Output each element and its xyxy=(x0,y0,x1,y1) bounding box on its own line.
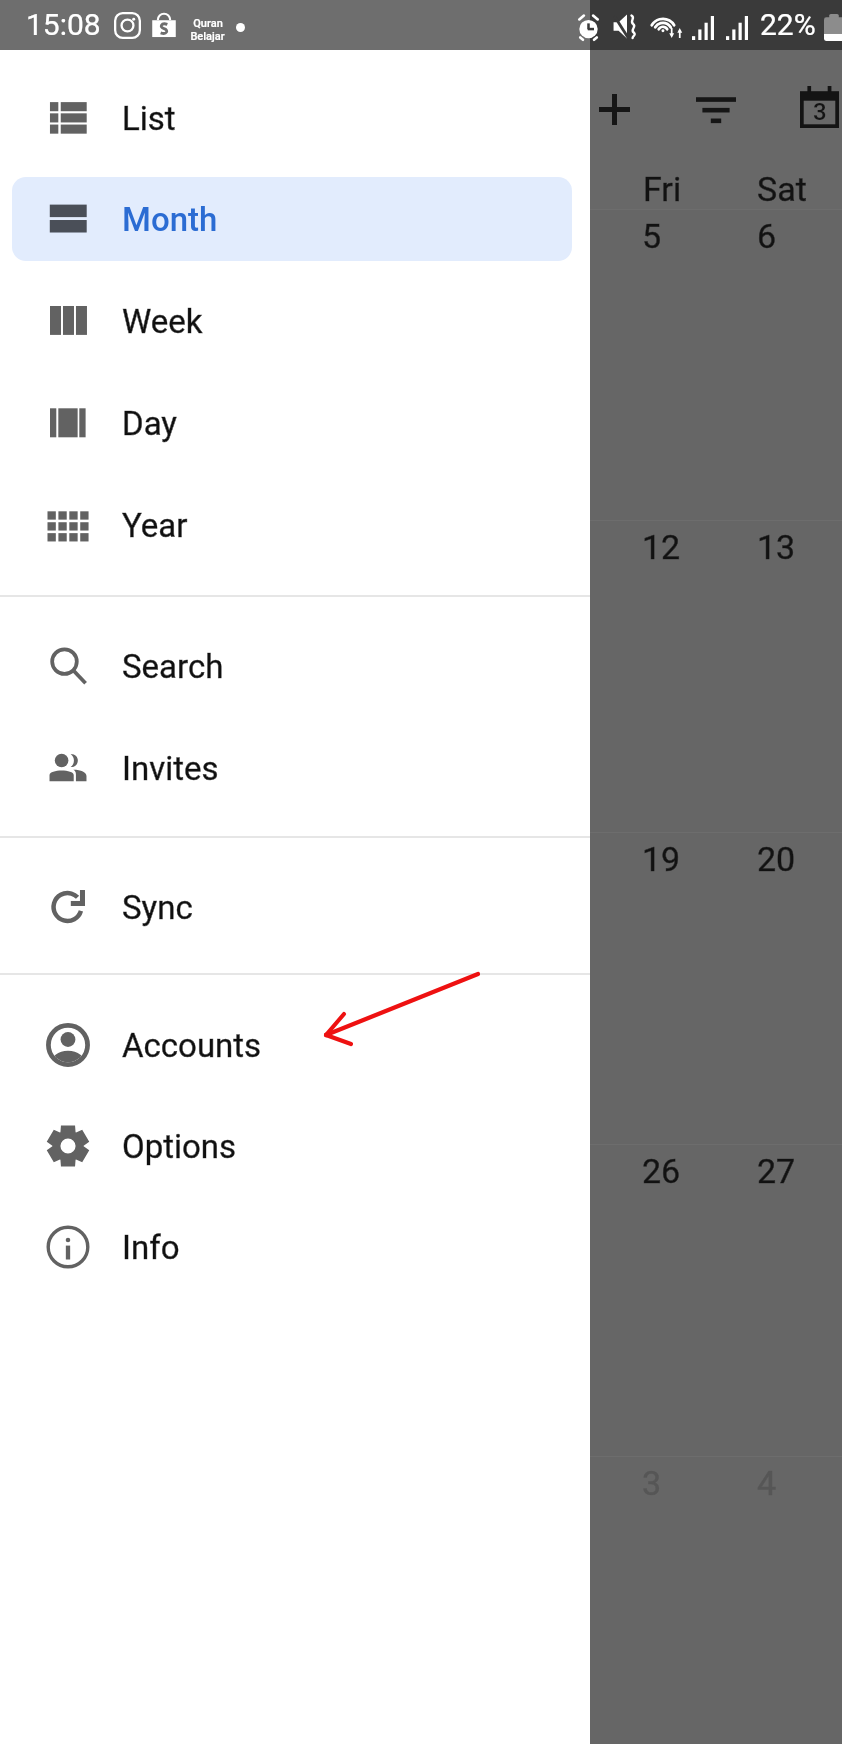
staticText: 19 xyxy=(642,839,681,879)
staticText: 5 xyxy=(642,216,662,256)
staticText: Tue xyxy=(273,169,329,209)
staticText: 26 xyxy=(642,1151,681,1191)
staticText: Week xyxy=(122,302,203,341)
button[interactable]: Sync xyxy=(12,865,572,949)
staticText: Sync xyxy=(122,888,193,927)
button[interactable]: Info xyxy=(12,1205,572,1289)
button[interactable]: Week xyxy=(12,279,572,363)
staticText: 21 xyxy=(66,1151,105,1191)
staticText: 3 xyxy=(642,1463,662,1503)
staticText: List xyxy=(122,99,176,138)
button[interactable]: Add event xyxy=(584,79,644,139)
staticText: Invites xyxy=(122,749,219,788)
staticText: 4 xyxy=(757,1463,777,1503)
button[interactable]: Accounts xyxy=(12,1003,572,1087)
staticText: 22% xyxy=(760,7,816,42)
staticText: Day xyxy=(122,404,177,443)
staticText: Week xyxy=(122,302,203,341)
staticText: 7 xyxy=(66,527,86,567)
staticText: Wed xyxy=(388,169,455,209)
staticText: 20 xyxy=(757,839,796,879)
staticText: 26 xyxy=(642,1151,681,1191)
staticText: 3 xyxy=(813,98,827,126)
staticText: Fri xyxy=(643,169,682,209)
button[interactable]: Filter xyxy=(686,79,746,139)
button[interactable]: Search xyxy=(12,624,572,708)
staticText: 6 xyxy=(757,216,777,256)
staticText: Thu xyxy=(512,169,570,209)
staticText: 13 xyxy=(757,527,796,567)
staticText: Info xyxy=(122,1228,180,1267)
staticText: Invites xyxy=(122,749,219,788)
staticText: 22 xyxy=(181,1151,220,1191)
staticText: 27 xyxy=(757,1151,796,1191)
button[interactable]: Go to today xyxy=(788,77,842,137)
staticText: Tue xyxy=(273,169,329,209)
staticText: 4 xyxy=(757,1463,777,1503)
staticText: Accounts xyxy=(122,1026,262,1065)
staticText: Sat xyxy=(757,169,807,209)
staticText: Thu xyxy=(512,169,570,209)
staticText: List xyxy=(122,99,176,138)
staticText: Info xyxy=(122,1228,180,1267)
staticText: Month xyxy=(122,200,218,239)
staticText: Sat xyxy=(757,169,807,209)
staticText: Mon xyxy=(146,169,214,209)
staticText: 22 xyxy=(181,1151,220,1191)
staticText: Wed xyxy=(388,169,455,209)
button[interactable]: Invites xyxy=(12,726,572,810)
staticText: Quran xyxy=(193,17,223,30)
staticText: 5 xyxy=(642,216,662,256)
button[interactable]: Month xyxy=(12,177,572,261)
button[interactable]: Options xyxy=(12,1104,572,1188)
staticText: 21 xyxy=(66,1151,105,1191)
staticText: Options xyxy=(122,1127,237,1166)
button[interactable]: Year xyxy=(12,483,572,567)
staticText: Accounts xyxy=(122,1026,262,1065)
staticText: Year xyxy=(122,506,188,545)
staticText: Search xyxy=(122,647,224,686)
staticText: 8 xyxy=(181,527,201,567)
staticText: Fri xyxy=(643,169,682,209)
staticText: 27 xyxy=(757,1151,796,1191)
staticText: Year xyxy=(122,506,188,545)
staticText: Sun xyxy=(31,169,89,209)
staticText: 15:08 xyxy=(26,7,101,42)
staticText: 3 xyxy=(642,1463,662,1503)
staticText: 7 xyxy=(66,527,86,567)
staticText: Mon xyxy=(146,169,214,209)
button[interactable]: Day xyxy=(12,381,572,465)
staticText: 1 xyxy=(181,216,201,256)
button[interactable]: List xyxy=(12,76,572,160)
